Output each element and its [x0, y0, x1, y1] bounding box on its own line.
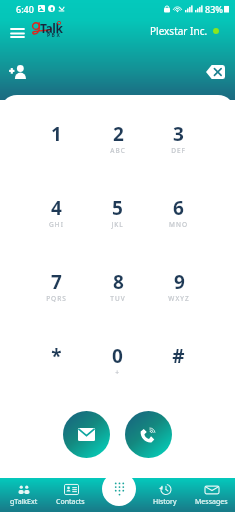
button[interactable]: 8 [87, 269, 148, 309]
button[interactable]: 0 [87, 343, 148, 383]
staticText: 6 [173, 195, 184, 221]
staticText: + [115, 368, 120, 377]
button[interactable]: Backspace [201, 58, 229, 86]
button[interactable]: 2 [87, 121, 148, 161]
staticText: ABC [110, 146, 126, 155]
button[interactable]: Send message [63, 411, 110, 458]
staticText: PBX [47, 32, 62, 39]
button[interactable]: gTalkExt [0, 478, 47, 512]
button[interactable]: 9 [148, 269, 209, 309]
button[interactable]: Contacts [47, 478, 94, 512]
staticText: Messages [195, 497, 228, 507]
button[interactable]: 7 [26, 269, 87, 309]
button[interactable]: 4 [26, 195, 87, 235]
button[interactable]: Add contact [4, 58, 32, 86]
button[interactable]: 6 [148, 195, 209, 235]
staticText: 6:40 [16, 3, 34, 15]
staticText: gTalkExt [10, 497, 38, 507]
staticText: JKL [111, 220, 124, 229]
staticText: TUV [110, 294, 126, 303]
staticText: 8 [113, 269, 124, 295]
staticText: Plexstar Inc. [150, 24, 208, 38]
button[interactable]: Call [125, 411, 172, 458]
button[interactable]: Plexstar Inc. [150, 24, 219, 38]
staticText: Talk [40, 20, 63, 36]
staticText: GHI [49, 220, 64, 229]
button[interactable]: # [148, 343, 209, 383]
button[interactable]: Menu [3, 19, 31, 47]
staticText: 1 [51, 121, 62, 147]
staticText: 0 [112, 343, 123, 369]
staticText: History [153, 497, 177, 507]
staticText: 2 [113, 121, 124, 147]
button[interactable]: History [141, 478, 188, 512]
button[interactable]: * [26, 343, 87, 383]
staticText: MNO [169, 220, 188, 229]
staticText: * [51, 343, 62, 369]
button[interactable]: 3 [148, 121, 209, 161]
button[interactable]: 5 [87, 195, 148, 235]
staticText: 7 [51, 269, 62, 295]
staticText: WXYZ [168, 294, 190, 303]
button[interactable]: 1 [26, 121, 87, 161]
button[interactable]: Dialpad [102, 472, 136, 506]
staticText: DEF [171, 146, 186, 155]
staticText: PQRS [46, 294, 67, 303]
staticText: 9 [174, 269, 185, 295]
staticText: # [172, 343, 185, 369]
staticText: Contacts [56, 497, 85, 507]
staticText: 5 [112, 195, 123, 221]
staticText: 4 [51, 195, 62, 221]
button[interactable]: Messages [188, 478, 235, 512]
staticText: 83% [205, 3, 223, 15]
staticText: 3 [173, 121, 184, 147]
